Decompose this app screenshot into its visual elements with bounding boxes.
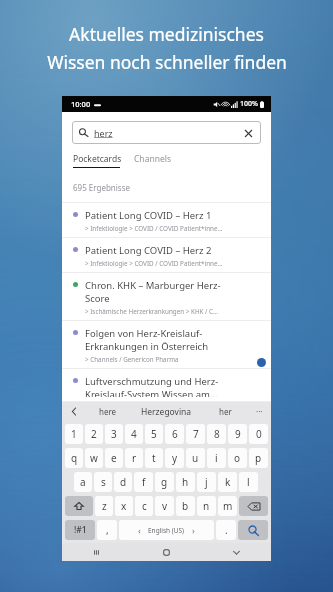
staticText: her (219, 406, 232, 417)
button[interactable]: d (114, 472, 132, 492)
button[interactable]: Patient Long COVID – Herz 2 (62, 238, 271, 273)
button[interactable]: q (65, 448, 83, 468)
button[interactable]: 7 (186, 424, 205, 444)
button[interactable]: Shift (65, 496, 93, 516)
staticText: 0 (256, 427, 262, 441)
button[interactable]: c (135, 496, 153, 516)
button[interactable]: 2 (85, 424, 103, 444)
staticText: Wissen noch schneller finden (47, 50, 287, 74)
staticText: > Ischämische Herzerkrankungen > KHK / C… (85, 307, 219, 316)
button[interactable]: j (197, 472, 216, 492)
button[interactable]: v (155, 496, 174, 516)
staticText: a (80, 475, 86, 489)
button[interactable]: 0 (249, 424, 268, 444)
button[interactable]: x (115, 496, 133, 516)
staticText: Patient Long COVID – Herz 1 (85, 209, 212, 222)
staticText: c (142, 499, 147, 513)
staticText: y (172, 451, 178, 465)
staticText: v (162, 499, 168, 513)
staticText: i (215, 451, 218, 465)
staticText: 6 (172, 427, 178, 441)
button[interactable]: Home (131, 543, 201, 561)
button[interactable]: n (197, 496, 216, 516)
button[interactable]: y (165, 448, 184, 468)
button[interactable]: , (97, 520, 117, 540)
button[interactable]: l (239, 472, 258, 492)
button[interactable]: here (86, 402, 129, 421)
staticText: e (111, 451, 117, 465)
button[interactable]: u (186, 448, 205, 468)
staticText: > Channels / Genericon Pharma (85, 355, 179, 364)
button[interactable]: g (155, 472, 174, 492)
button[interactable]: Herzegovina (129, 402, 203, 421)
staticText: 2 (91, 427, 97, 441)
button[interactable]: i (207, 448, 226, 468)
button[interactable]: f (134, 472, 153, 492)
button[interactable]: 4 (125, 424, 143, 444)
staticText: here (99, 406, 117, 417)
staticText: 9 (235, 427, 241, 441)
button[interactable]: ‹ (119, 520, 214, 540)
staticText: › (192, 524, 195, 536)
button[interactable]: p (249, 448, 268, 468)
button[interactable]: More (247, 402, 271, 421)
staticText: 5 (151, 427, 157, 441)
button[interactable]: 5 (145, 424, 163, 444)
staticText: > Infektiologie > COVID / COVID Patient*… (85, 259, 223, 268)
button[interactable]: Chron. KHK – Marburger Herz- (62, 273, 271, 321)
staticText: English (US) (148, 526, 185, 535)
button[interactable]: 3 (105, 424, 123, 444)
staticText: > Infektiologie > COVID / COVID Patient*… (85, 224, 223, 233)
button[interactable]: a (74, 472, 92, 492)
button[interactable]: Channels (134, 153, 171, 165)
button[interactable]: Backspace (239, 496, 268, 516)
button[interactable]: 9 (228, 424, 247, 444)
button[interactable]: Clear (242, 127, 254, 139)
staticText: . (225, 523, 228, 537)
staticText: Erkrankungen in Österreich (85, 340, 209, 353)
button[interactable]: Search (72, 121, 261, 144)
button[interactable]: 1 (65, 424, 83, 444)
button[interactable]: s (94, 472, 112, 492)
button[interactable]: Search (238, 520, 268, 540)
button[interactable]: Back (201, 543, 271, 561)
button[interactable]: Previous (62, 402, 86, 421)
staticText: Herzegovina (141, 406, 192, 418)
button[interactable]: . (216, 520, 236, 540)
staticText: Channels (134, 153, 171, 165)
staticText: r (132, 451, 137, 465)
staticText: Aktuelles medizinisches (69, 22, 264, 46)
button[interactable]: 8 (207, 424, 226, 444)
button[interactable]: k (218, 472, 237, 492)
staticText: h (182, 475, 189, 489)
staticText: 100% (240, 99, 258, 109)
button[interactable]: Luftverschmutzung und Herz- (62, 369, 271, 402)
button[interactable]: z (95, 496, 113, 516)
button[interactable]: e (105, 448, 123, 468)
button[interactable]: m (218, 496, 237, 516)
staticText: ··· (256, 406, 263, 417)
button[interactable]: 6 (165, 424, 184, 444)
button[interactable]: Recents (62, 543, 131, 561)
button[interactable]: Patient Long COVID – Herz 1 (62, 203, 271, 238)
button[interactable]: r (125, 448, 143, 468)
button[interactable]: o (228, 448, 247, 468)
button[interactable]: t (145, 448, 163, 468)
button[interactable]: her (203, 402, 247, 421)
staticText: !#1 (74, 524, 87, 536)
staticText: 4 (131, 427, 137, 441)
staticText: l (247, 475, 250, 489)
button[interactable]: Open (257, 358, 266, 367)
button[interactable]: Pocketcards (73, 153, 122, 168)
staticText: d (120, 475, 127, 489)
button[interactable]: Folgen von Herz-Kreislauf- (62, 321, 271, 369)
button[interactable]: b (176, 496, 195, 516)
button[interactable]: w (85, 448, 103, 468)
staticText: 8 (214, 427, 220, 441)
staticText: g (161, 475, 168, 489)
staticText: herz (94, 127, 113, 139)
staticText: x (121, 499, 127, 513)
button[interactable]: h (176, 472, 195, 492)
staticText: Chron. KHK – Marburger Herz- (85, 279, 221, 292)
button[interactable]: !#1 (65, 520, 95, 540)
